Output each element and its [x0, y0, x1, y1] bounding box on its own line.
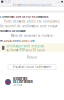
- staticText: FR-2024-0085-3921-XK: [0, 39, 35, 42]
- staticText: demarches.interieur.gouv.fr: [12, 3, 51, 7]
- staticText: telecharger votre recepisse: [6, 44, 44, 48]
- staticText: Votre demande a bien ete enregistree: [4, 20, 60, 23]
- staticText: NUMERO DE DOSSIER: [0, 29, 26, 33]
- staticText: Visualiser toute la démarche: [12, 65, 51, 69]
- staticText: Liberté · Égalité: [13, 84, 22, 86]
- staticText: 9:41: [4, 0, 11, 3]
- staticText: CONFIRMATION DE VOTRE DEMANDE: [0, 15, 48, 18]
- staticText: DE L'INTÉRIEUR: [13, 80, 33, 84]
- staticText: Un courriel de confirmation a ete envoye: [0, 24, 58, 28]
- button[interactable]: Visualiser toute la démarche: [8, 64, 56, 69]
- staticText: ·—: [56, 0, 60, 3]
- button[interactable]: Retour: [0, 55, 64, 59]
- staticText: MINISTÈRE: [13, 77, 27, 81]
- staticText: Merci de conserver ce numero: [11, 34, 53, 37]
- staticText: au format PDF sous 30 jours: [6, 48, 44, 52]
- staticText: Retour: [27, 56, 37, 59]
